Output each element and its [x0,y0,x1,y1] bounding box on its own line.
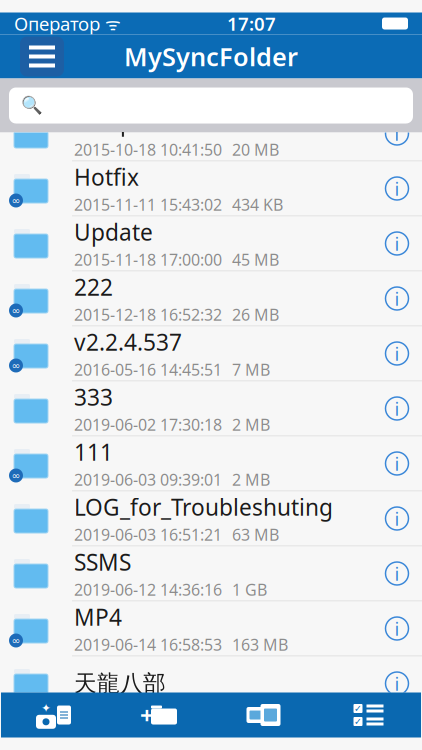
button[interactable]: SSMS [0,546,422,601]
button[interactable]: More Info [372,216,422,270]
staticText: LOG_for_Troubleshuting [74,492,333,522]
staticText: 222 [74,272,113,302]
staticText: 2 MB [232,469,270,490]
staticText: Sample Pictures [74,107,245,137]
button[interactable]: 天龍八部 [0,656,422,710]
button[interactable]: More Info [372,271,422,325]
staticText: 2019-06-12 14:36:16 [74,579,222,600]
button[interactable]: ∞ [0,601,422,656]
button[interactable]: More Info [372,491,422,545]
staticText: 2019-06-14 16:58:53 [74,634,222,655]
staticText: ∞ [11,194,20,206]
button[interactable]: More Info [372,326,422,380]
button[interactable]: Scan Document [1,692,106,737]
button[interactable]: Select [316,692,421,737]
button[interactable]: ∞ [0,161,422,216]
button[interactable]: More Info [372,161,422,215]
button[interactable]: ∞ [0,271,422,326]
button[interactable]: More Info [372,601,422,655]
button[interactable]: New Folder [106,692,211,737]
staticText: Оператор [14,11,100,36]
staticText: ✦ [41,701,51,715]
staticText: MySyncFolder [124,40,298,73]
staticText: 163 MB [232,634,288,655]
button[interactable]: Sample Pictures [0,106,422,161]
staticText: 2015-11-18 17:00:00 [74,249,222,270]
staticText: ∞ [11,304,20,316]
staticText: 26 MB [232,304,279,325]
staticText: 333 [74,382,113,412]
staticText: 434 KB [232,194,283,215]
button[interactable]: ∞ [0,436,422,491]
staticText: 45 MB [232,249,279,270]
staticText: i [394,451,399,476]
staticText: ∞ [11,469,20,481]
button[interactable]: 333 [0,381,422,436]
button[interactable]: ∞ [0,326,422,381]
staticText: i [394,671,399,696]
staticText: i [394,231,399,256]
staticText: ∞ [11,634,20,646]
staticText: i [394,396,399,421]
staticText: ∞ [11,359,20,371]
button[interactable]: More Info [372,106,422,160]
staticText: v2.2.4.537 [74,327,182,357]
staticText: 2 MB [232,414,270,435]
staticText: i [394,286,399,311]
button[interactable]: Upload Media [211,692,316,737]
staticText: i [394,506,399,531]
staticText: 17:07 [227,11,276,36]
staticText: i [394,561,399,586]
button[interactable]: More Info [372,381,422,435]
staticText: Update [74,217,153,247]
button[interactable]: More Info [372,656,422,710]
staticText: i [394,121,399,146]
button[interactable]: More Info [372,546,422,600]
button[interactable]: Update [0,216,422,271]
staticText: 2015-11-11 15:43:02 [74,194,222,215]
staticText: 7 MB [232,359,270,380]
staticText: ✓ [354,703,362,714]
staticText: + [140,699,154,731]
staticText: 20 MB [232,139,279,160]
staticText: 天龍八部 [74,670,166,697]
staticText: 2015-10-18 10:41:50 [74,139,222,160]
staticText: i [394,176,399,201]
staticText: Hotfix [74,162,139,192]
staticText: SSMS [74,547,131,577]
staticText: 2019-06-02 17:30:18 [74,414,222,435]
staticText: 2016-05-16 14:45:51 [74,359,222,380]
button[interactable]: Menu [20,36,64,76]
staticText: 2015-12-18 16:52:32 [74,304,222,325]
staticText: 2019-06-03 16:51:21 [74,524,222,545]
button[interactable]: More Info [372,436,422,490]
staticText: MP4 [74,602,122,632]
button[interactable]: LOG_for_Troubleshuting [0,491,422,546]
staticText: 1 GB [232,579,267,600]
staticText: 2019-06-03 09:39:01 [74,469,222,490]
staticText: 63 MB [232,524,279,545]
staticText: 111 [74,437,113,467]
staticText: i [394,616,399,641]
staticText: ᯤ [100,12,121,35]
staticText: 🔍 [21,96,43,115]
staticText: ✓ [354,716,362,727]
staticText: i [394,341,399,366]
